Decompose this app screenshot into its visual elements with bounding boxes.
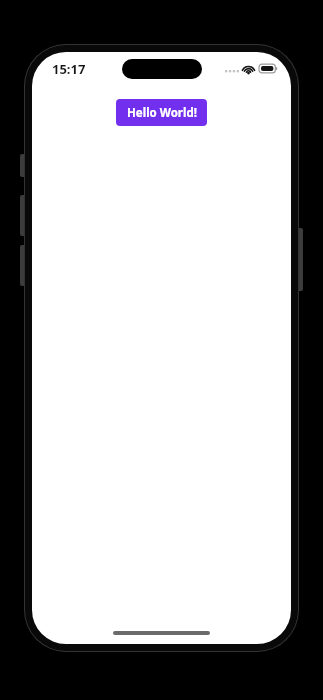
staticText: 15:17 xyxy=(52,60,86,78)
other: Home indicator xyxy=(113,631,210,635)
staticText: Hello World! xyxy=(127,105,197,121)
button[interactable]: Hello World! xyxy=(116,99,207,126)
